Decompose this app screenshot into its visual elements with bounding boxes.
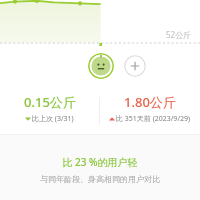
staticText: 52公斤 xyxy=(166,29,192,40)
staticText: 1.80公斤 xyxy=(124,93,176,111)
button[interactable]: Add record xyxy=(124,55,146,77)
staticText: 与同年龄段、身高相同的用户对比 xyxy=(40,174,160,184)
staticText: 比 351天前 (2023/9/29) xyxy=(116,114,191,124)
staticText: 比 23 %的用户轻 xyxy=(62,155,138,169)
button[interactable]: 1.80公斤 xyxy=(100,93,200,129)
button[interactable]: 比 23 %的用户轻 xyxy=(0,134,200,200)
button[interactable]: 0.15公斤 xyxy=(0,93,99,129)
staticText: 比上次 (3/31) xyxy=(32,114,74,124)
button[interactable]: Profile avatar xyxy=(88,53,114,79)
staticText: 0.15公斤 xyxy=(24,93,76,111)
